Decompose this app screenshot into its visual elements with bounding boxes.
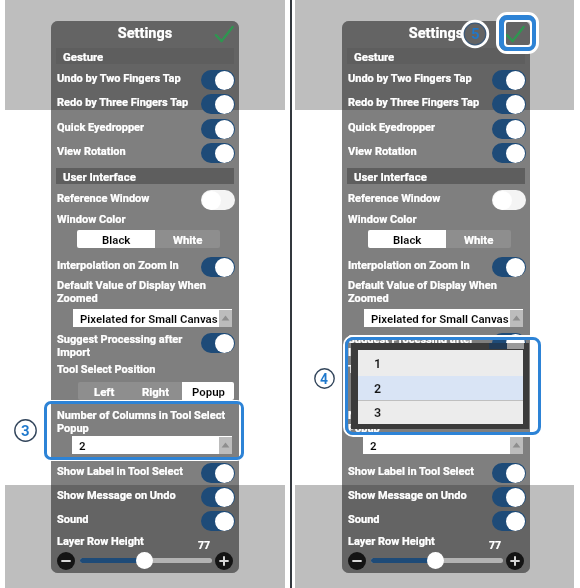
button[interactable]: Interpolation on Zoom In bbox=[201, 257, 235, 277]
staticText: 5 bbox=[471, 25, 480, 43]
button[interactable]: Increase layer row height bbox=[215, 552, 233, 570]
button[interactable]: Reference Window bbox=[201, 190, 235, 210]
button[interactable]: Show Message on Undo bbox=[492, 487, 526, 507]
button[interactable]: White bbox=[446, 230, 511, 248]
button[interactable]: Show Message on Undo bbox=[201, 487, 235, 507]
button[interactable]: Decrease layer row height bbox=[57, 552, 75, 570]
button[interactable]: View Rotation bbox=[201, 143, 235, 163]
button[interactable]: Open column count list bbox=[219, 437, 232, 454]
button[interactable]: White bbox=[155, 230, 220, 248]
button[interactable]: Interpolation on Zoom In bbox=[492, 257, 526, 277]
staticText: View Rotation bbox=[348, 145, 417, 158]
button[interactable]: Quick Eyedropper bbox=[492, 119, 526, 139]
staticText: Black bbox=[102, 233, 131, 246]
button[interactable]: Pixelated for Small Canvas bbox=[364, 309, 523, 327]
button[interactable]: Sound bbox=[492, 511, 526, 531]
staticText: Sound bbox=[348, 513, 380, 526]
staticText: White bbox=[464, 233, 494, 246]
staticText: Tool Select Position bbox=[348, 363, 447, 376]
staticText: Settings bbox=[51, 25, 239, 42]
button[interactable]: Suggest Processing after Import bbox=[492, 333, 526, 353]
button[interactable]: Redo by Three Fingers Tap bbox=[201, 94, 235, 114]
staticText: Suggest Processing after bbox=[348, 333, 474, 346]
staticText: Window Color bbox=[348, 213, 417, 226]
button[interactable]: Layer row height slider bbox=[427, 552, 444, 569]
staticText: Redo by Three Fingers Tap bbox=[348, 96, 480, 109]
button[interactable]: Popup bbox=[473, 382, 525, 400]
button[interactable]: Black bbox=[368, 230, 446, 248]
button[interactable]: Gesture bbox=[56, 48, 234, 64]
button[interactable]: Reference Window bbox=[492, 190, 526, 210]
button[interactable]: Black bbox=[77, 230, 155, 248]
staticText: Layer Row Height bbox=[348, 535, 435, 548]
button[interactable]: Suggest Processing after Import bbox=[201, 333, 235, 353]
button[interactable]: Quick Eyedropper bbox=[201, 119, 235, 139]
button[interactable]: User Interface bbox=[56, 168, 234, 184]
button[interactable]: Decrease layer row height bbox=[348, 552, 366, 570]
button[interactable]: 1 bbox=[358, 350, 523, 376]
button[interactable]: Open display value list bbox=[510, 310, 523, 327]
staticText: Number of Columns in Tool Select bbox=[348, 409, 517, 422]
staticText: Undo by Two Fingers Tap bbox=[348, 72, 472, 85]
staticText: Number of Columns in Tool Select bbox=[57, 409, 226, 422]
button[interactable]: Undo by Two Fingers Tap bbox=[201, 70, 235, 90]
staticText: Zoomed bbox=[57, 292, 98, 305]
staticText: Show Label in Tool Select bbox=[57, 465, 183, 478]
staticText: Sound bbox=[57, 513, 89, 526]
staticText: Redo by Three Fingers Tap bbox=[57, 96, 189, 109]
staticText: Interpolation on Zoom In bbox=[348, 259, 470, 272]
button[interactable]: Right bbox=[130, 382, 182, 400]
staticText: Window Color bbox=[57, 213, 126, 226]
staticText: 3 bbox=[374, 405, 382, 420]
button[interactable]: Show Label in Tool Select bbox=[492, 463, 526, 483]
staticText: 2 bbox=[374, 381, 382, 396]
staticText: 2 bbox=[370, 439, 377, 452]
button[interactable]: Show Label in Tool Select bbox=[201, 463, 235, 483]
staticText: Tool Select Position bbox=[57, 363, 156, 376]
button[interactable]: Left bbox=[369, 382, 421, 400]
staticText: 77 bbox=[51, 539, 210, 551]
button[interactable]: Layer row height slider bbox=[136, 552, 153, 569]
button[interactable]: Left bbox=[78, 382, 130, 400]
button[interactable]: Popup bbox=[182, 382, 234, 400]
staticText: 1 bbox=[374, 356, 382, 371]
button[interactable]: Pixelated for Small Canvas bbox=[73, 309, 232, 327]
button[interactable]: 3 bbox=[358, 400, 523, 424]
staticText: Pixelated for Small Canvas bbox=[80, 312, 218, 325]
button[interactable]: Open column count list bbox=[510, 437, 523, 454]
staticText: Show Message on Undo bbox=[57, 489, 176, 502]
staticText: Show Message on Undo bbox=[348, 489, 467, 502]
button[interactable]: Increase layer row height bbox=[506, 552, 524, 570]
button[interactable]: 2 bbox=[358, 376, 523, 400]
staticText: Black bbox=[393, 233, 422, 246]
staticText: Gesture bbox=[63, 50, 104, 63]
button[interactable]: Redo by Three Fingers Tap bbox=[492, 94, 526, 114]
staticText: View Rotation bbox=[57, 145, 126, 158]
button[interactable]: Apply settings bbox=[503, 23, 527, 45]
staticText: Interpolation on Zoom In bbox=[57, 259, 179, 272]
button[interactable]: 2 bbox=[363, 436, 523, 454]
staticText: Popup bbox=[348, 422, 380, 435]
button[interactable]: Open display value list bbox=[219, 310, 232, 327]
staticText: Right bbox=[142, 385, 170, 398]
staticText: Quick Eyedropper bbox=[348, 121, 436, 134]
button[interactable]: 2 bbox=[72, 436, 232, 454]
staticText: 2 bbox=[79, 439, 86, 452]
staticText: 77 bbox=[342, 539, 501, 551]
staticText: Quick Eyedropper bbox=[57, 121, 145, 134]
button[interactable]: Undo by Two Fingers Tap bbox=[492, 70, 526, 90]
button[interactable]: User Interface bbox=[347, 168, 525, 184]
staticText: 4 bbox=[320, 371, 329, 387]
staticText: Import bbox=[57, 346, 91, 359]
staticText: Popup bbox=[57, 422, 89, 435]
button[interactable]: Sound bbox=[201, 511, 235, 531]
staticText: Show Label in Tool Select bbox=[348, 465, 474, 478]
button[interactable]: View Rotation bbox=[492, 143, 526, 163]
staticText: Import bbox=[348, 346, 382, 359]
staticText: Default Value of Display When bbox=[348, 279, 497, 292]
staticText: White bbox=[173, 233, 203, 246]
button[interactable]: Apply settings bbox=[212, 23, 236, 45]
button[interactable]: Gesture bbox=[347, 48, 525, 64]
